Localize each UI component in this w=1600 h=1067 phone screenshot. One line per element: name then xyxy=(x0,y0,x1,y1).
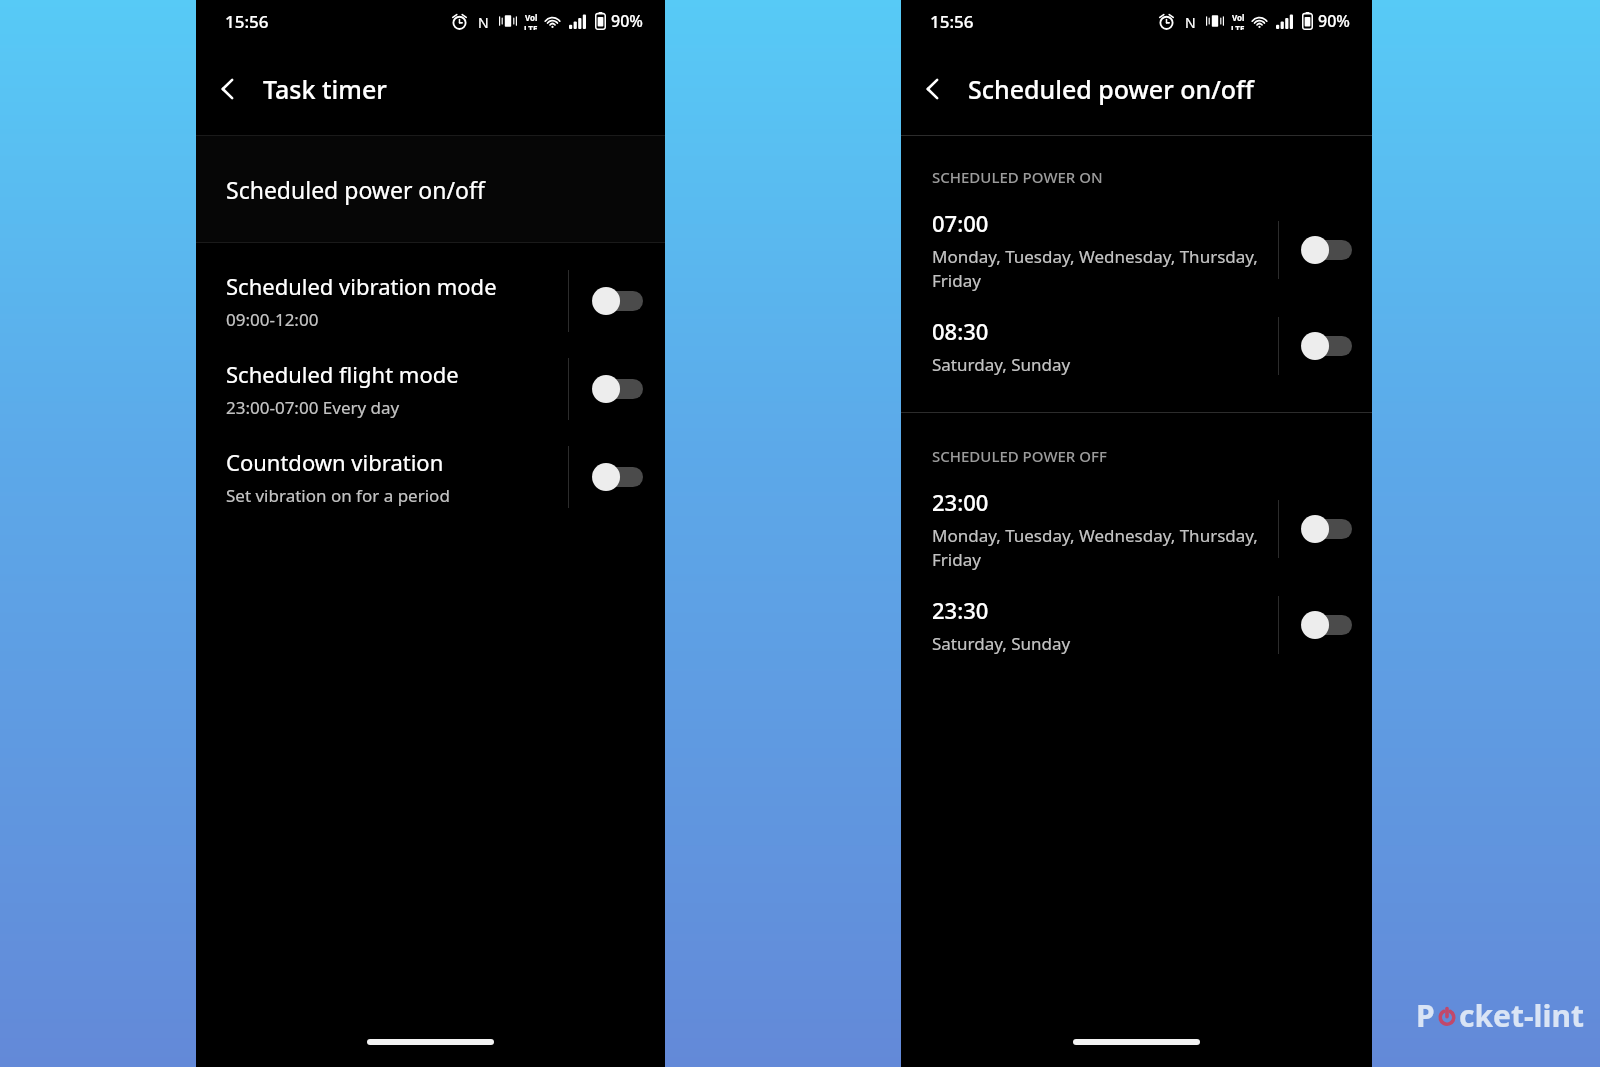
button[interactable]: Toggle Scheduled vibration mode xyxy=(569,257,665,345)
staticText: 90% xyxy=(1318,10,1350,32)
button[interactable]: 23:30 xyxy=(901,583,1372,667)
staticText: LTE xyxy=(1231,23,1245,30)
staticText: 23:30 xyxy=(932,595,989,625)
staticText: Task timer xyxy=(263,72,387,106)
button[interactable]: 08:30 xyxy=(901,304,1372,388)
button[interactable]: Countdown vibration xyxy=(196,433,665,521)
staticText: SCHEDULED POWER OFF xyxy=(932,446,1107,466)
button[interactable]: 07:00 xyxy=(901,196,1372,304)
button[interactable]: Back xyxy=(196,57,260,121)
button[interactable]: Toggle alarm 23:30 xyxy=(1279,583,1372,667)
button[interactable]: Back xyxy=(901,57,965,121)
staticText: Monday, Tuesday, Wednesday, Thursday, Fr… xyxy=(932,524,1258,571)
staticText: Saturday, Sunday xyxy=(932,353,1071,376)
staticText: Set vibration on for a period xyxy=(226,484,450,507)
staticText: 07:00 xyxy=(932,208,989,238)
staticText: Vol xyxy=(1232,12,1245,23)
staticText: Scheduled power on/off xyxy=(226,174,485,205)
staticText: SCHEDULED POWER ON xyxy=(932,167,1103,187)
staticText: 90% xyxy=(611,10,643,32)
button[interactable]: Toggle alarm 07:00 xyxy=(1279,196,1372,304)
staticText: Monday, Tuesday, Wednesday, Thursday, Fr… xyxy=(932,245,1258,292)
button[interactable]: Toggle alarm 23:00 xyxy=(1279,475,1372,583)
staticText: P xyxy=(1416,995,1435,1036)
staticText: 23:00-07:00 Every day xyxy=(226,396,400,419)
staticText: Scheduled flight mode xyxy=(226,359,459,389)
button[interactable]: 23:00 xyxy=(901,475,1372,583)
button[interactable]: Scheduled power on/off xyxy=(196,136,665,242)
button[interactable]: Toggle Countdown vibration xyxy=(569,433,665,521)
staticText: 09:00-12:00 xyxy=(226,308,319,331)
staticText: 15:56 xyxy=(930,10,974,33)
button[interactable]: Scheduled vibration mode xyxy=(196,257,665,345)
staticText: Countdown vibration xyxy=(226,447,444,477)
button[interactable]: Scheduled flight mode xyxy=(196,345,665,433)
staticText: 23:00 xyxy=(932,487,989,517)
button[interactable]: Toggle Scheduled flight mode xyxy=(569,345,665,433)
staticText: N xyxy=(478,13,489,30)
staticText: N xyxy=(1185,13,1196,30)
staticText: cket-lint xyxy=(1459,995,1585,1036)
staticText: 15:56 xyxy=(225,10,269,33)
staticText: LTE xyxy=(524,23,538,30)
button[interactable]: Toggle alarm 08:30 xyxy=(1279,304,1372,388)
staticText: Vol xyxy=(525,12,538,23)
staticText: 08:30 xyxy=(932,316,989,346)
staticText: Saturday, Sunday xyxy=(932,632,1071,655)
staticText: Scheduled power on/off xyxy=(968,72,1254,106)
staticText: Scheduled vibration mode xyxy=(226,271,497,301)
